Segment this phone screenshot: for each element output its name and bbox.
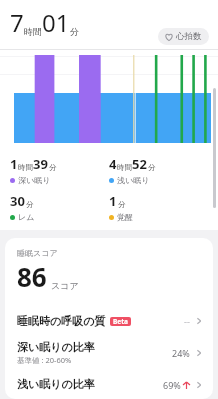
other: 詳細: [195, 381, 203, 389]
staticText: 30: [10, 192, 25, 210]
staticText: 時間: [18, 163, 33, 172]
button[interactable]: 深い眠りの比率: [5, 334, 213, 371]
staticText: 7: [10, 6, 24, 39]
staticText: 01: [42, 6, 70, 39]
other: 詳細: [195, 349, 203, 357]
staticText: 基準値 : 20-60%: [17, 355, 72, 365]
staticText: 86: [17, 259, 47, 294]
other: 詳細: [195, 317, 203, 325]
staticText: 39: [33, 155, 48, 173]
staticText: 時間: [117, 163, 132, 172]
staticText: 分: [49, 163, 57, 172]
staticText: 4: [109, 155, 117, 173]
button[interactable]: 浅い眠りの比率: [5, 371, 213, 399]
button[interactable]: 心拍数: [158, 28, 209, 45]
staticText: --: [184, 315, 190, 327]
staticText: 睡眠スコア: [17, 248, 58, 258]
staticText: 1: [109, 192, 117, 210]
staticText: 分: [148, 163, 156, 172]
staticText: 浅い眠り: [117, 175, 150, 185]
staticText: 52: [132, 155, 147, 173]
staticText: 時間: [24, 26, 42, 37]
button[interactable]: 睡眠時の呼吸の質: [5, 308, 213, 334]
staticText: 24%: [172, 347, 190, 359]
staticText: 睡眠時の呼吸の質: [17, 314, 106, 328]
staticText: 覚醒: [117, 212, 133, 222]
staticText: 分: [70, 26, 79, 37]
staticText: スコア: [51, 280, 79, 291]
staticText: レム: [18, 212, 35, 222]
staticText: 深い眠りの比率: [17, 340, 95, 354]
staticText: 分: [118, 200, 126, 209]
staticText: 心拍数: [176, 31, 202, 42]
staticText: 69%: [163, 379, 181, 391]
staticText: 深い眠り: [18, 175, 51, 185]
staticText: 分: [26, 200, 34, 209]
staticText: Beta: [113, 317, 128, 326]
staticText: 浅い眠りの比率: [17, 377, 95, 391]
staticText: 1: [10, 155, 18, 173]
